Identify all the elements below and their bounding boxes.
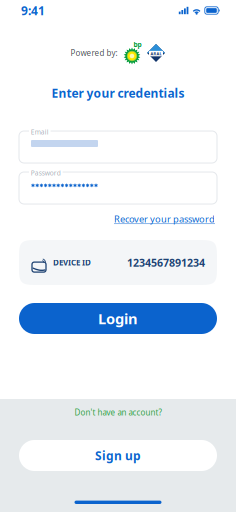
- staticText: Sign up: [95, 447, 141, 463]
- staticText: 9:41: [21, 2, 45, 18]
- staticText: Don't have an account?: [74, 407, 161, 418]
- staticText: ARAL: [150, 51, 161, 56]
- staticText: Powered by:: [70, 48, 117, 58]
- button[interactable]: Sign up: [19, 440, 217, 471]
- staticText: Email: [31, 127, 49, 136]
- button[interactable]: Login: [19, 303, 217, 334]
- staticText: Login: [98, 309, 138, 328]
- staticText: DEVICE ID: [53, 257, 91, 268]
- button[interactable]: Recover your password: [114, 213, 215, 225]
- staticText: 1234567891234: [127, 255, 205, 270]
- staticText: Enter your credentials: [51, 85, 184, 101]
- staticText: Password: [31, 168, 61, 177]
- staticText: bp: [133, 40, 141, 49]
- staticText: Recover your password: [114, 213, 215, 225]
